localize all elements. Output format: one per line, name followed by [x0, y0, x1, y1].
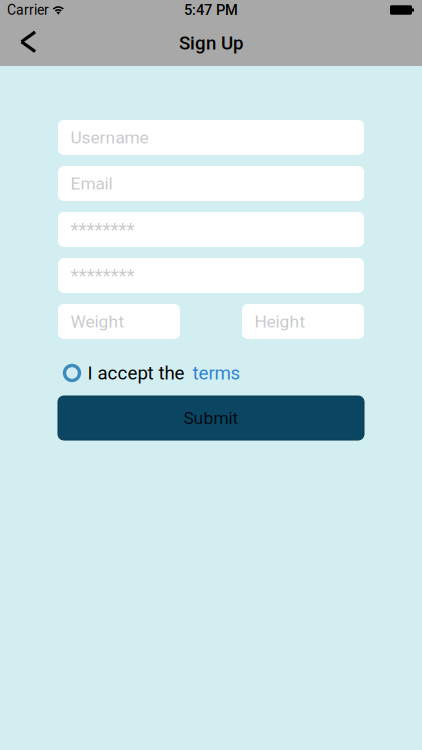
button[interactable]: Back [0, 20, 52, 66]
button[interactable]: ******** [58, 258, 364, 293]
staticText: Carrier [7, 2, 49, 18]
button[interactable]: Weight [58, 304, 180, 339]
button[interactable]: Username [58, 120, 364, 155]
button[interactable]: Submit [58, 396, 364, 440]
staticText: Username [70, 127, 148, 148]
staticText: Submit [183, 408, 238, 428]
staticText: Sign Up [179, 32, 243, 54]
button[interactable]: terms [192, 360, 240, 386]
staticText: I accept the [87, 362, 184, 384]
button[interactable]: ******** [58, 212, 364, 247]
staticText: Height [254, 311, 305, 332]
button[interactable]: Email [58, 166, 364, 201]
staticText: ******** [70, 265, 134, 287]
button[interactable]: I accept the [58, 360, 184, 386]
button[interactable]: Height [242, 304, 364, 339]
staticText: 5:47 PM [184, 1, 238, 19]
staticText: Email [70, 173, 112, 194]
staticText: Weight [70, 311, 124, 332]
staticText: ******** [70, 219, 134, 241]
staticText: terms [192, 362, 240, 384]
